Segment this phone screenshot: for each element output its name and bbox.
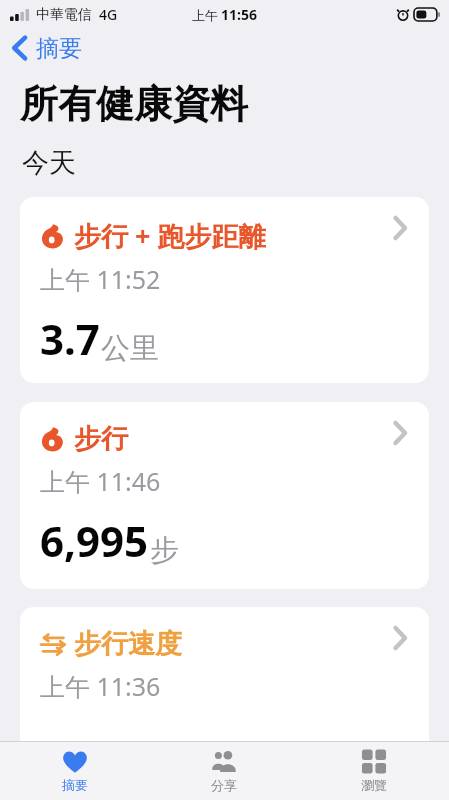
staticText: 摘要 [62, 777, 88, 793]
staticText: 3.7 [40, 310, 100, 367]
button[interactable]: 摘要 [0, 742, 149, 800]
staticText: 上午 11:52 [40, 262, 161, 296]
staticText: 摘要 [36, 34, 82, 63]
button[interactable]: 摘要 [0, 28, 94, 68]
staticText: 上午 11:46 [40, 464, 161, 498]
staticText: 步行 [74, 422, 128, 456]
staticText: 公里 [101, 330, 159, 367]
staticText: 11:56 [221, 5, 257, 24]
button[interactable]: 步行 [20, 402, 429, 589]
button[interactable]: 步行 + 跑步距離 [385, 213, 415, 243]
staticText: 步 [150, 532, 179, 569]
button[interactable]: 瀏覽 [299, 742, 449, 800]
staticText: 步行速度 [74, 627, 182, 661]
staticText: 分享 [211, 777, 237, 793]
staticText: 今天 [22, 146, 76, 180]
staticText: 步行 + 跑步距離 [74, 217, 266, 254]
staticText: 上午 [192, 7, 218, 23]
staticText: 瀏覽 [361, 777, 387, 793]
button[interactable]: 分享 [149, 742, 299, 800]
button[interactable]: 步行 + 跑步距離 [20, 197, 429, 383]
staticText: 所有健康資料 [20, 80, 248, 128]
button[interactable]: 步行速度 [385, 623, 415, 653]
staticText: 4G [99, 5, 118, 24]
staticText: 上午 11:36 [40, 669, 161, 703]
staticText: 6,995 [40, 512, 149, 569]
button[interactable]: 步行 [385, 418, 415, 448]
button[interactable]: 步行速度 [20, 607, 429, 793]
staticText: 中華電信 [36, 6, 92, 24]
